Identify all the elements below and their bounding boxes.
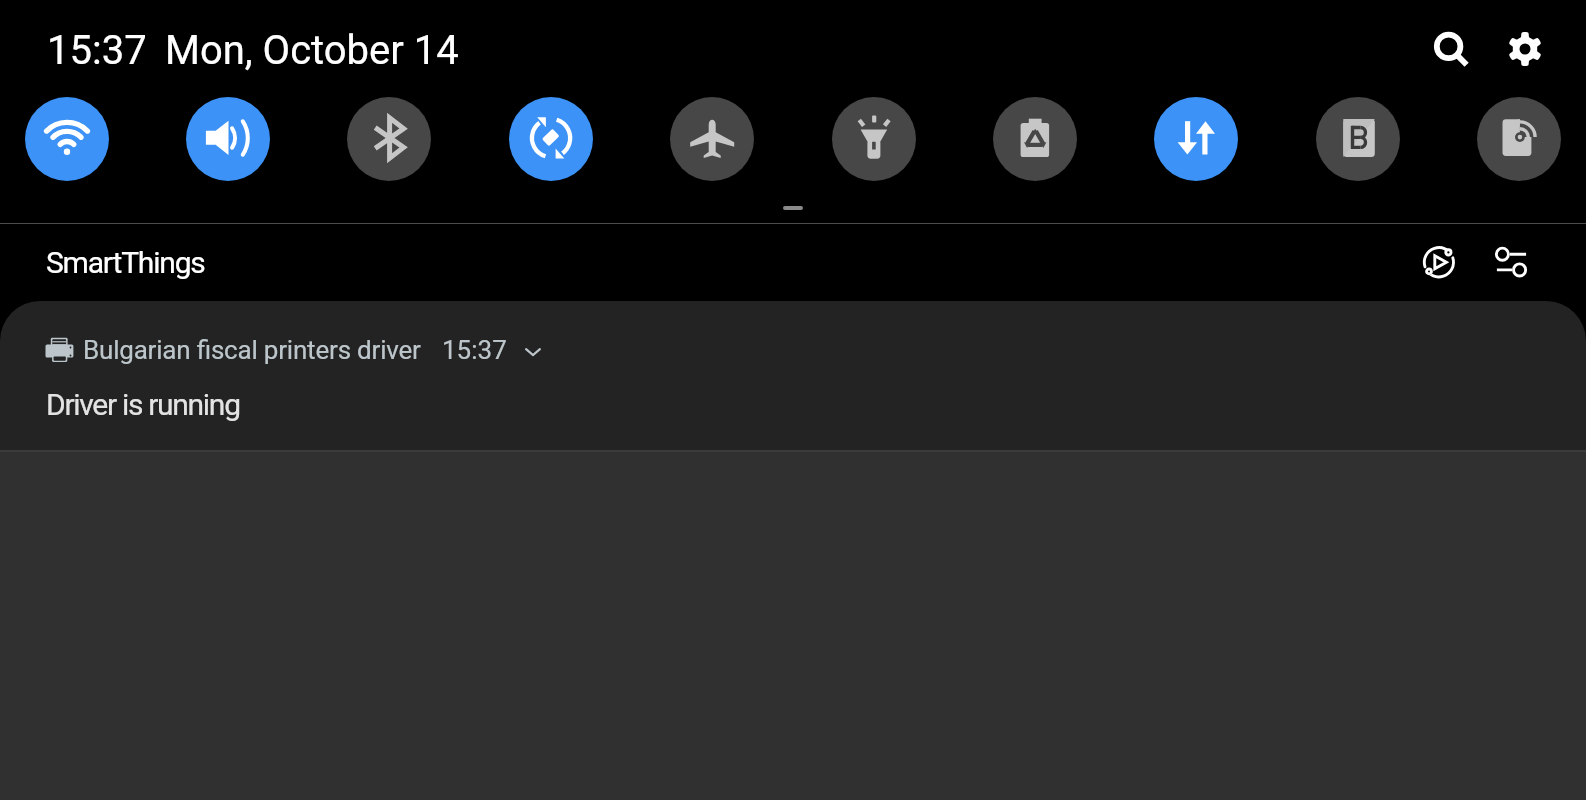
button[interactable]: Power saving bbox=[993, 97, 1077, 181]
button[interactable]: Auto rotate bbox=[509, 97, 593, 181]
button[interactable]: Bixby bbox=[1316, 97, 1400, 181]
button[interactable]: Notification settings bbox=[1483, 234, 1539, 290]
button[interactable]: Wi-Fi bbox=[25, 97, 109, 181]
button[interactable]: Bulgarian fiscal printers driver notific… bbox=[0, 301, 1586, 450]
button[interactable]: Flashlight bbox=[832, 97, 916, 181]
staticText: 15:37 bbox=[442, 335, 507, 365]
button[interactable]: Settings bbox=[1497, 21, 1553, 77]
staticText: Driver is running bbox=[46, 387, 240, 422]
button[interactable]: Sound bbox=[186, 97, 270, 181]
button[interactable]: Media output bbox=[1411, 234, 1467, 290]
button[interactable]: NFC bbox=[1477, 97, 1561, 181]
button[interactable]: Search bbox=[1422, 20, 1478, 76]
button[interactable]: Mobile data bbox=[1154, 97, 1238, 181]
button[interactable]: Flight mode bbox=[670, 97, 754, 181]
staticText: Bulgarian fiscal printers driver bbox=[83, 335, 421, 365]
staticText: 15:37 bbox=[47, 27, 147, 74]
staticText: SmartThings bbox=[46, 245, 205, 280]
button[interactable]: Bluetooth bbox=[347, 97, 431, 181]
staticText: Mon, October 14 bbox=[165, 27, 459, 74]
